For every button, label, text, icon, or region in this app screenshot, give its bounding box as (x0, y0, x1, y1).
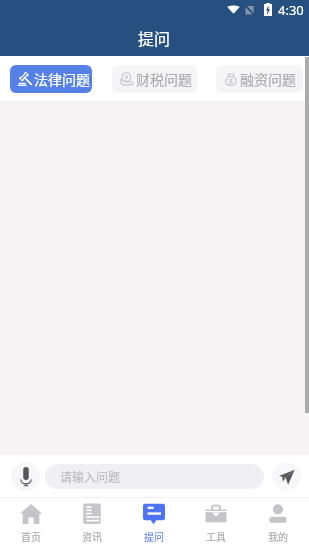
staticText: 首页 (21, 529, 41, 543)
staticText: 4:30 (278, 1, 304, 19)
button[interactable]: 请输入问题 (45, 464, 264, 489)
button[interactable]: 融资问题 (216, 65, 303, 93)
staticText: 法律问题 (34, 69, 90, 89)
staticText: 提问 (144, 529, 164, 543)
button[interactable]: 法律问题 (10, 65, 92, 93)
button[interactable]: 提问 (123, 497, 185, 550)
button[interactable]: 财税问题 (112, 65, 197, 93)
staticText: 提问 (138, 26, 171, 49)
staticText: 融资问题 (240, 69, 296, 89)
button[interactable]: 首页 (0, 497, 61, 550)
button[interactable]: 我的 (247, 497, 309, 550)
staticText: 请输入问题 (60, 468, 121, 485)
staticText: 工具 (206, 529, 226, 543)
button[interactable]: Voice input (11, 462, 40, 491)
button[interactable]: 资讯 (61, 497, 123, 550)
button[interactable]: 工具 (185, 497, 247, 550)
staticText: 我的 (268, 529, 288, 543)
staticText: 财税问题 (136, 69, 192, 89)
button[interactable]: Send (272, 462, 301, 491)
staticText: 资讯 (82, 529, 102, 543)
